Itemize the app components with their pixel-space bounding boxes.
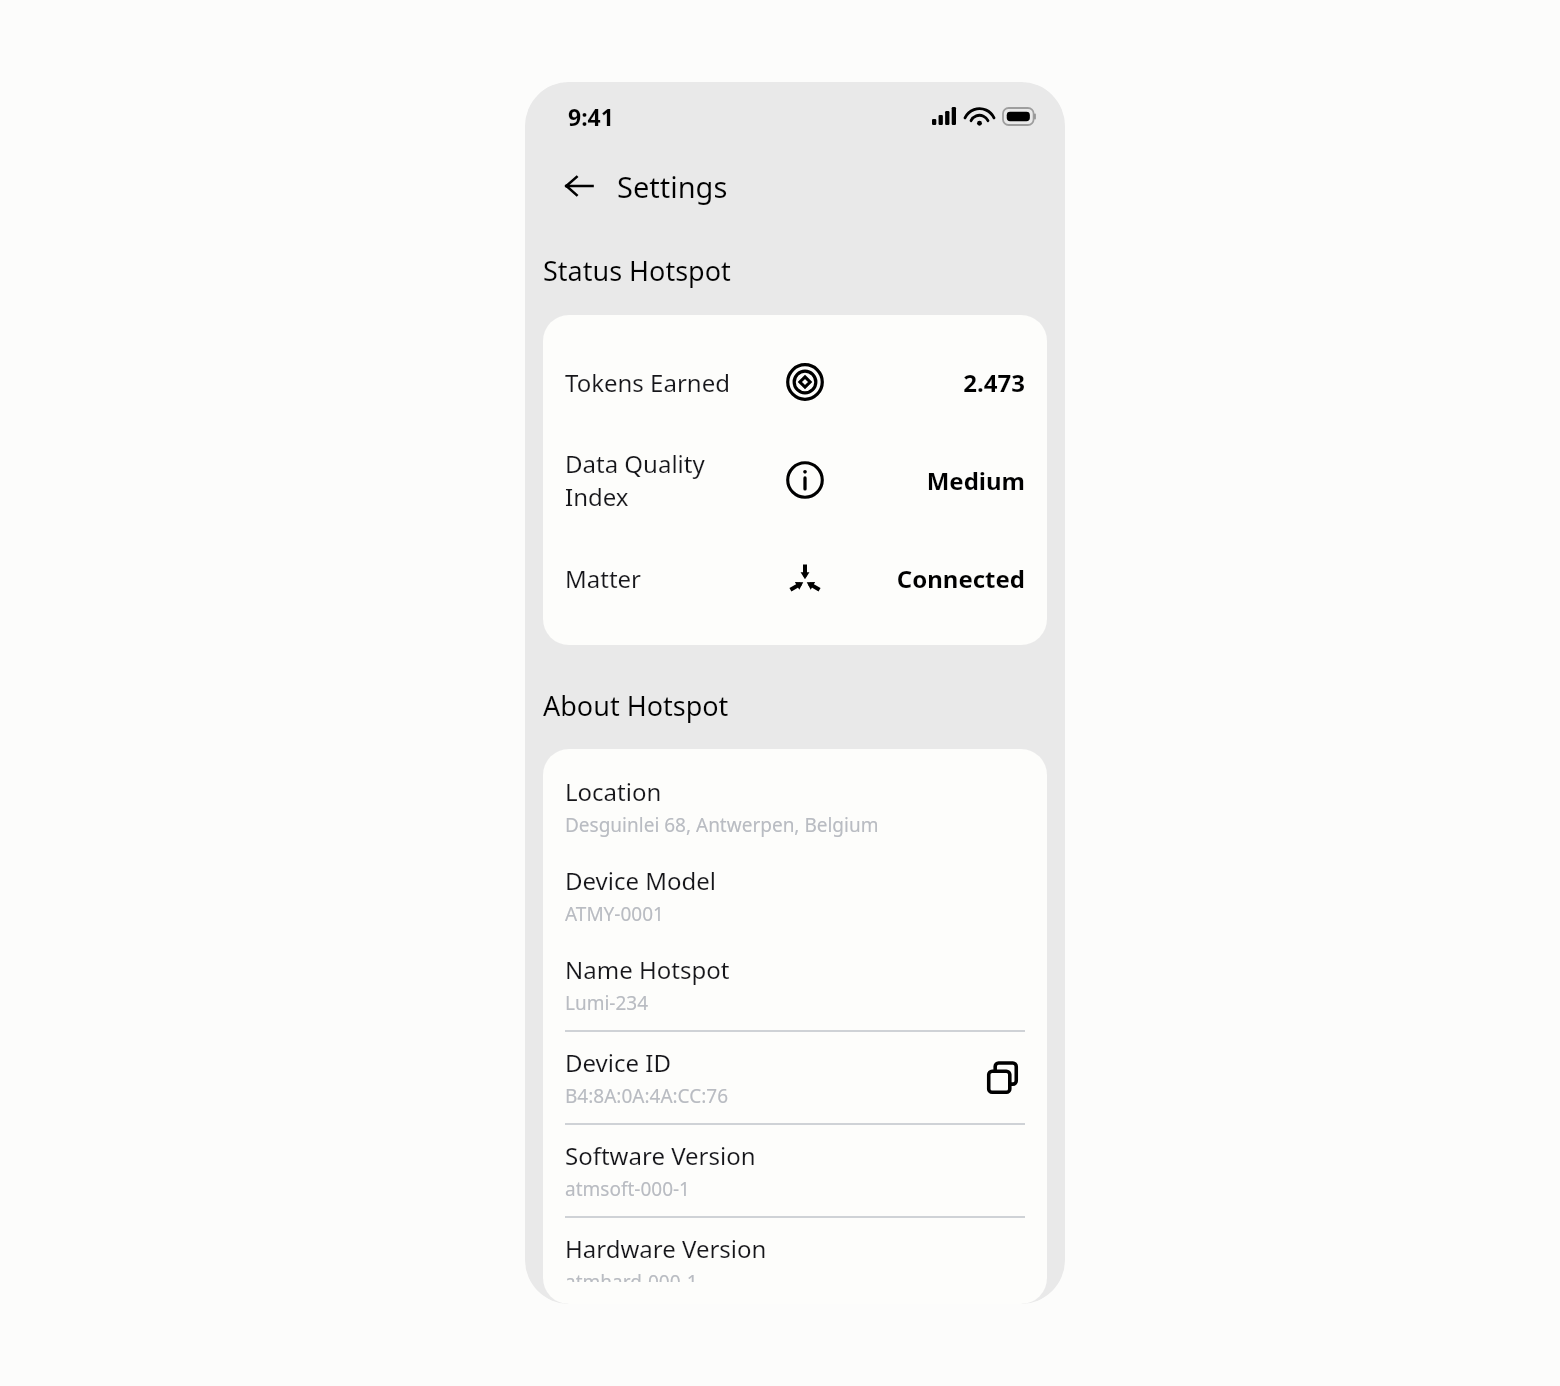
staticText: Matter xyxy=(565,562,765,595)
staticText: Software Version xyxy=(565,1139,756,1172)
staticText: 2.473 xyxy=(963,366,1025,399)
staticText: Medium xyxy=(926,464,1025,497)
button[interactable]: Copy device ID xyxy=(981,1056,1025,1100)
staticText: Desguinlei 68, Antwerpen, Belgium xyxy=(565,812,879,838)
button[interactable]: Name Hotspot xyxy=(543,953,1047,1046)
staticText: Settings xyxy=(617,167,728,206)
staticText: 9:41 xyxy=(568,101,614,132)
button[interactable]: Matter xyxy=(543,529,1047,627)
staticText: Data Quality Index xyxy=(565,447,765,513)
button[interactable]: Hardware Version xyxy=(543,1232,1047,1282)
button[interactable]: Software Version xyxy=(543,1139,1047,1232)
staticText: atmsoft-000-1 xyxy=(565,1176,690,1202)
button[interactable]: Location xyxy=(543,775,1047,864)
staticText: Lumi-234 xyxy=(565,990,649,1016)
staticText: Status Hotspot xyxy=(543,252,731,289)
button[interactable]: Device ID xyxy=(543,1046,1047,1139)
staticText: Device ID xyxy=(565,1046,671,1079)
staticText: B4:8A:0A:4A:CC:76 xyxy=(565,1083,729,1109)
staticText: Location xyxy=(565,775,662,808)
staticText: About Hotspot xyxy=(543,687,729,724)
staticText: Hardware Version xyxy=(565,1232,767,1265)
staticText: Connected xyxy=(896,562,1025,595)
staticText: ATMY-0001 xyxy=(565,901,664,927)
staticText: Tokens Earned xyxy=(565,366,765,399)
button[interactable]: Device Model xyxy=(543,864,1047,953)
button[interactable]: Data Quality Index xyxy=(543,431,1047,529)
staticText: Name Hotspot xyxy=(565,953,730,986)
button[interactable]: Back xyxy=(555,162,603,210)
staticText: atmhard-000-1 xyxy=(565,1269,698,1282)
button[interactable]: Tokens Earned xyxy=(543,333,1047,431)
staticText: Device Model xyxy=(565,864,717,897)
